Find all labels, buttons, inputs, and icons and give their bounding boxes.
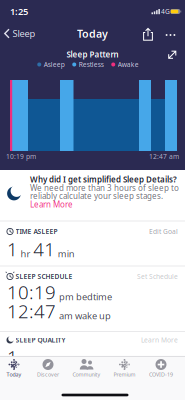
staticText: 12:47 xyxy=(7,299,56,323)
staticText: We need more than 3 hours of sleep to xyxy=(30,183,179,193)
staticText: reliably calculate your sleep stages. xyxy=(30,191,163,201)
staticText: Set Schedule xyxy=(137,272,178,281)
staticText: 1 xyxy=(7,237,18,261)
staticText: Sleep Pattern xyxy=(66,49,118,60)
staticText: Edit Goal xyxy=(149,227,178,236)
staticText: Restless xyxy=(79,60,104,69)
staticText: 12:47 am xyxy=(149,152,179,161)
staticText: Premium xyxy=(113,371,135,378)
staticText: Learn More xyxy=(141,336,178,344)
staticText: SLEEP SCHEDULE xyxy=(15,272,72,281)
staticText: 10:19 pm xyxy=(6,152,36,161)
staticText: 41 xyxy=(33,237,55,261)
staticText: 10:19 xyxy=(7,280,56,304)
staticText: Asleep xyxy=(44,60,65,69)
staticText: pm bedtime xyxy=(59,290,112,303)
staticText: Community xyxy=(72,371,100,378)
staticText: Learn More xyxy=(30,199,73,210)
staticText: TIME ASLEEP xyxy=(15,227,57,236)
staticText: Sleep xyxy=(12,27,35,40)
staticText: hr xyxy=(21,247,31,260)
staticText: 1:25 xyxy=(10,5,28,18)
staticText: Today xyxy=(6,371,21,378)
staticText: am wake up xyxy=(59,309,111,322)
staticText: min xyxy=(58,247,75,260)
staticText: Awake xyxy=(118,60,139,69)
staticText: Today xyxy=(77,26,108,41)
staticText: COVID-19 xyxy=(149,371,173,378)
staticText: 1 xyxy=(7,345,18,369)
staticText: SLEEP QUALITY xyxy=(15,336,65,344)
staticText: Discover xyxy=(37,371,59,378)
staticText: Why did I get simplified Sleep Details? xyxy=(30,174,177,185)
staticText: 4G xyxy=(161,7,170,16)
